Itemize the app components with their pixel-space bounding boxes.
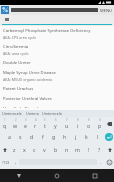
button[interactable]: 7 <box>61 117 72 130</box>
staticText: v <box>43 146 46 153</box>
button[interactable]: x <box>19 143 29 156</box>
staticText: 8 <box>77 118 79 122</box>
button[interactable]: Urea Cycle Disorder <box>0 104 114 110</box>
staticText: AKA: MSUD organic acidemia <box>3 77 52 82</box>
button[interactable]: Maple Syrup Urine Disease <box>0 68 114 84</box>
staticText: Urea Cycle Disorder <box>3 106 42 108</box>
staticText: a <box>8 133 11 140</box>
button[interactable]: s <box>15 130 26 143</box>
button[interactable]: n <box>61 143 72 156</box>
staticText: g <box>52 133 56 140</box>
staticText: h <box>63 133 67 140</box>
staticText: ! <box>88 146 90 153</box>
button[interactable]: 6 <box>50 117 61 130</box>
button[interactable]: Citrullinemia <box>0 42 114 58</box>
staticText: 1 <box>4 118 6 122</box>
staticText: w <box>13 122 18 129</box>
button[interactable]: ? <box>94 143 105 156</box>
button[interactable]: 8 <box>72 117 83 130</box>
staticText: Ureterocele <box>2 111 22 116</box>
staticText: e <box>24 122 27 129</box>
staticText: y <box>54 122 57 129</box>
button[interactable]: Home <box>38 169 76 182</box>
staticText: j <box>75 133 77 140</box>
button[interactable]: 2 <box>10 117 20 130</box>
button[interactable]: 3 <box>20 117 30 130</box>
button[interactable]: g <box>48 130 59 143</box>
button[interactable] <box>0 15 114 26</box>
button[interactable]: 5 <box>40 117 50 130</box>
button[interactable]: , <box>12 156 19 168</box>
button[interactable]: b <box>50 143 61 156</box>
staticText: Posterior Urethral Valves <box>3 96 52 102</box>
staticText: 6 <box>55 118 57 122</box>
button[interactable]: Double Ureter <box>0 58 114 68</box>
staticText: 7 <box>66 118 68 122</box>
button[interactable]: l <box>92 130 103 143</box>
button[interactable]: ?123 <box>0 156 12 168</box>
button[interactable]: Posterior Urethral Valves <box>0 94 114 104</box>
button[interactable]: Recent apps <box>76 169 114 182</box>
button[interactable]: Patent Urachus <box>0 84 114 94</box>
button[interactable]: Ureterocele <box>2 111 22 116</box>
staticText: c <box>33 146 36 153</box>
button[interactable]: 1 <box>0 117 10 130</box>
staticText: x <box>23 146 26 153</box>
button[interactable]: . <box>97 156 104 168</box>
button[interactable]: m <box>72 143 83 156</box>
staticText: AKA: CPS urea cycle <box>3 35 36 40</box>
button[interactable]: a <box>4 130 15 143</box>
staticText: 2 <box>15 118 17 122</box>
staticText: Patent Urachus <box>3 86 34 92</box>
staticText: q <box>3 122 7 129</box>
button[interactable]: h <box>59 130 70 143</box>
button[interactable]: 4 <box>30 117 40 130</box>
button[interactable]: j <box>70 130 81 143</box>
staticText: , <box>15 159 17 165</box>
staticText: 5 <box>44 118 46 122</box>
staticText: ?123 <box>2 160 10 165</box>
staticText: MENU <box>100 8 112 13</box>
button[interactable]: k <box>81 130 92 143</box>
staticText: 3 <box>25 118 27 122</box>
button[interactable]: Emoji <box>104 156 114 168</box>
staticText: Maple Syrup Urine Disease <box>3 70 56 76</box>
staticText: Carbamoyl Phosphate Synthetase Deficienc… <box>3 28 91 34</box>
button[interactable]: Shift <box>0 143 9 156</box>
button[interactable]: v <box>39 143 50 156</box>
button[interactable]: c <box>29 143 39 156</box>
button[interactable]: Menu <box>100 8 112 13</box>
button[interactable]: Uretero <box>26 111 39 116</box>
staticText: z <box>13 146 16 153</box>
button[interactable]: Enter <box>103 130 114 143</box>
button[interactable]: Back <box>0 169 38 182</box>
staticText: 0 <box>99 118 101 122</box>
staticText: Citrullinemia <box>3 44 29 50</box>
staticText: ? <box>98 146 101 153</box>
button[interactable]: f <box>37 130 48 143</box>
staticText: m <box>75 146 80 153</box>
staticText: Ureterocelic <box>42 111 63 116</box>
staticText: t <box>44 122 46 129</box>
staticText: r <box>34 122 37 129</box>
staticText: p <box>98 122 102 129</box>
button[interactable]: ! <box>83 143 94 156</box>
button[interactable]: Backspace <box>105 117 114 130</box>
staticText: i <box>77 122 79 129</box>
button[interactable]: 0 <box>94 117 105 130</box>
button[interactable]: z <box>9 143 19 156</box>
button[interactable]: App icon <box>0 5 114 15</box>
button[interactable]: Carbamoyl Phosphate Synthetase Deficienc… <box>0 26 114 42</box>
staticText: d <box>30 133 34 140</box>
button[interactable]: d <box>26 130 37 143</box>
staticText: k <box>85 133 88 140</box>
staticText: Uretero <box>26 111 39 116</box>
staticText: s <box>19 133 22 140</box>
button[interactable]: Shift right <box>105 143 114 156</box>
staticText: l <box>97 133 99 140</box>
staticText: n <box>65 146 69 153</box>
staticText: b <box>54 146 58 153</box>
button[interactable]: Ureterocelic <box>42 111 63 116</box>
button[interactable]: 9 <box>83 117 94 130</box>
